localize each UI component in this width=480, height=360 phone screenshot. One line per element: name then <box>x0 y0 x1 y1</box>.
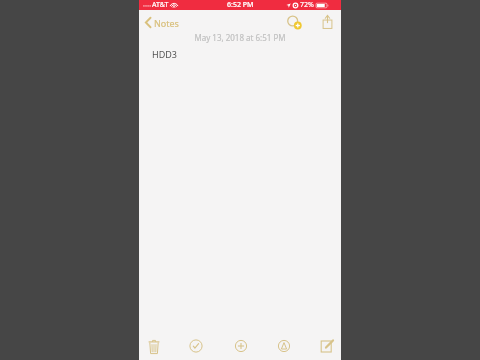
button[interactable]: Add <box>228 333 254 359</box>
staticText: May 13, 2018 at 6:51 PM <box>194 32 286 43</box>
staticText: 72% <box>300 0 314 10</box>
button[interactable]: Delete <box>141 334 167 360</box>
button[interactable]: Add People <box>285 13 303 31</box>
button[interactable]: Checklist <box>183 333 209 359</box>
button[interactable]: Notes <box>140 14 183 31</box>
staticText: AT&T <box>152 0 169 10</box>
staticText: Notes <box>154 17 179 29</box>
staticText: HDD3 <box>152 48 177 60</box>
button[interactable]: Share <box>318 13 336 31</box>
button[interactable]: Compose <box>314 333 340 359</box>
button[interactable]: Markup <box>271 333 297 359</box>
staticText: 6:52 PM <box>227 0 254 10</box>
